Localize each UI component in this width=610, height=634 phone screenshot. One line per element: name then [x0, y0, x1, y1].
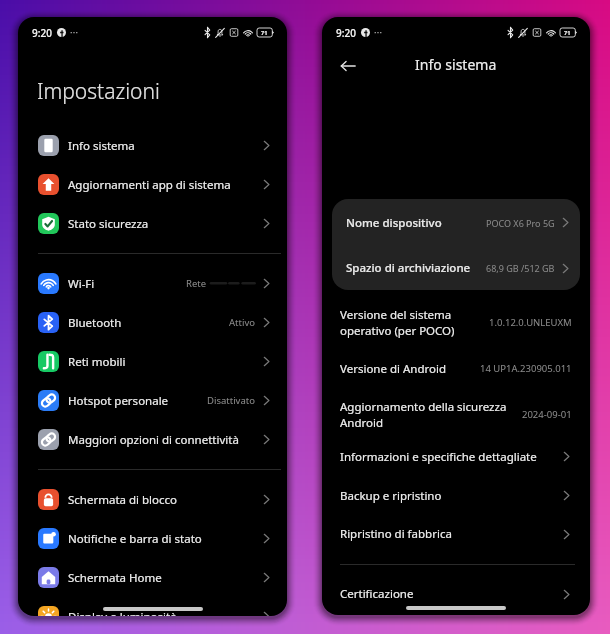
staticText: Bluetooth — [68, 315, 122, 331]
button[interactable]: Nome dispositivo — [332, 199, 580, 246]
staticText: Notifiche e barra di stato — [68, 531, 202, 547]
staticText: Disattivato — [207, 394, 255, 407]
button[interactable]: Display e luminosità — [18, 597, 287, 616]
staticText: Attivo — [229, 316, 255, 329]
staticText: Aggiornamento della sicurezza Android — [340, 399, 507, 430]
staticText: Schermata Home — [68, 570, 162, 586]
staticText: 1.0.12.0.UNLEUXM — [489, 316, 572, 329]
staticText: Aggiornamenti app di sistema — [68, 177, 231, 193]
staticText: 68,9 GB /512 GB — [486, 262, 555, 274]
staticText: Stato sicurezza — [68, 216, 149, 232]
button[interactable]: Reti mobili — [18, 342, 287, 381]
staticText: Impostazioni — [37, 77, 160, 106]
button[interactable]: Notifiche e barra di stato — [18, 519, 287, 558]
button[interactable]: Versione di Android — [322, 345, 590, 392]
staticText: Maggiori opzioni di connettività — [68, 432, 239, 448]
staticText: Info sistema — [415, 55, 497, 74]
staticText: Rete — [186, 277, 207, 290]
staticText: Wi-Fi — [68, 276, 95, 292]
button[interactable]: Backup e ripristino — [322, 476, 590, 515]
staticText: 2024-09-01 — [522, 408, 572, 421]
staticText: Reti mobili — [68, 354, 126, 370]
staticText: 9:20 — [32, 26, 52, 40]
button[interactable]: Stato sicurezza — [18, 204, 287, 243]
staticText: Versione di Android — [340, 361, 446, 377]
staticText: Backup e ripristino — [340, 488, 442, 504]
button[interactable]: Maggiori opzioni di connettività — [18, 420, 287, 459]
staticText: Ripristino di fabbrica — [340, 526, 452, 542]
staticText: 71 — [261, 29, 268, 36]
button[interactable]: Info sistema — [18, 126, 287, 165]
button[interactable]: Hotspot personale — [18, 381, 287, 420]
button[interactable]: Ripristino di fabbrica — [322, 515, 590, 553]
staticText: Informazioni e specifiche dettagliate — [340, 449, 537, 465]
staticText: Display e luminosità — [68, 609, 177, 616]
button[interactable]: Bluetooth — [18, 303, 287, 342]
button[interactable]: Schermata di blocco — [18, 480, 287, 519]
staticText: 9:20 — [336, 26, 356, 40]
button[interactable]: Versione del sistema operativo (per POCO… — [322, 299, 590, 345]
staticText: Nome dispositivo — [346, 215, 442, 231]
button[interactable]: Informazioni e specifiche dettagliate — [322, 437, 590, 476]
button[interactable]: Wi-Fi — [18, 264, 287, 303]
button[interactable]: Back — [336, 54, 360, 78]
button[interactable]: Aggiornamenti app di sistema — [18, 165, 287, 204]
button[interactable]: Schermata Home — [18, 558, 287, 597]
staticText: Schermata di blocco — [68, 492, 177, 508]
button[interactable]: Aggiornamento della sicurezza Android — [322, 392, 590, 437]
button[interactable]: Certificazione — [322, 576, 590, 612]
staticText: Info sistema — [68, 138, 135, 154]
staticText: POCO X6 Pro 5G — [486, 217, 555, 229]
staticText: 71 — [564, 29, 571, 36]
staticText: Spazio di archiviazione — [346, 260, 471, 276]
staticText: Hotspot personale — [68, 393, 169, 409]
staticText: Versione del sistema operativo (per POCO… — [340, 307, 455, 338]
staticText: Certificazione — [340, 586, 414, 602]
button[interactable]: Spazio di archiviazione — [332, 246, 580, 290]
staticText: 14 UP1A.230905.011 — [480, 362, 572, 375]
